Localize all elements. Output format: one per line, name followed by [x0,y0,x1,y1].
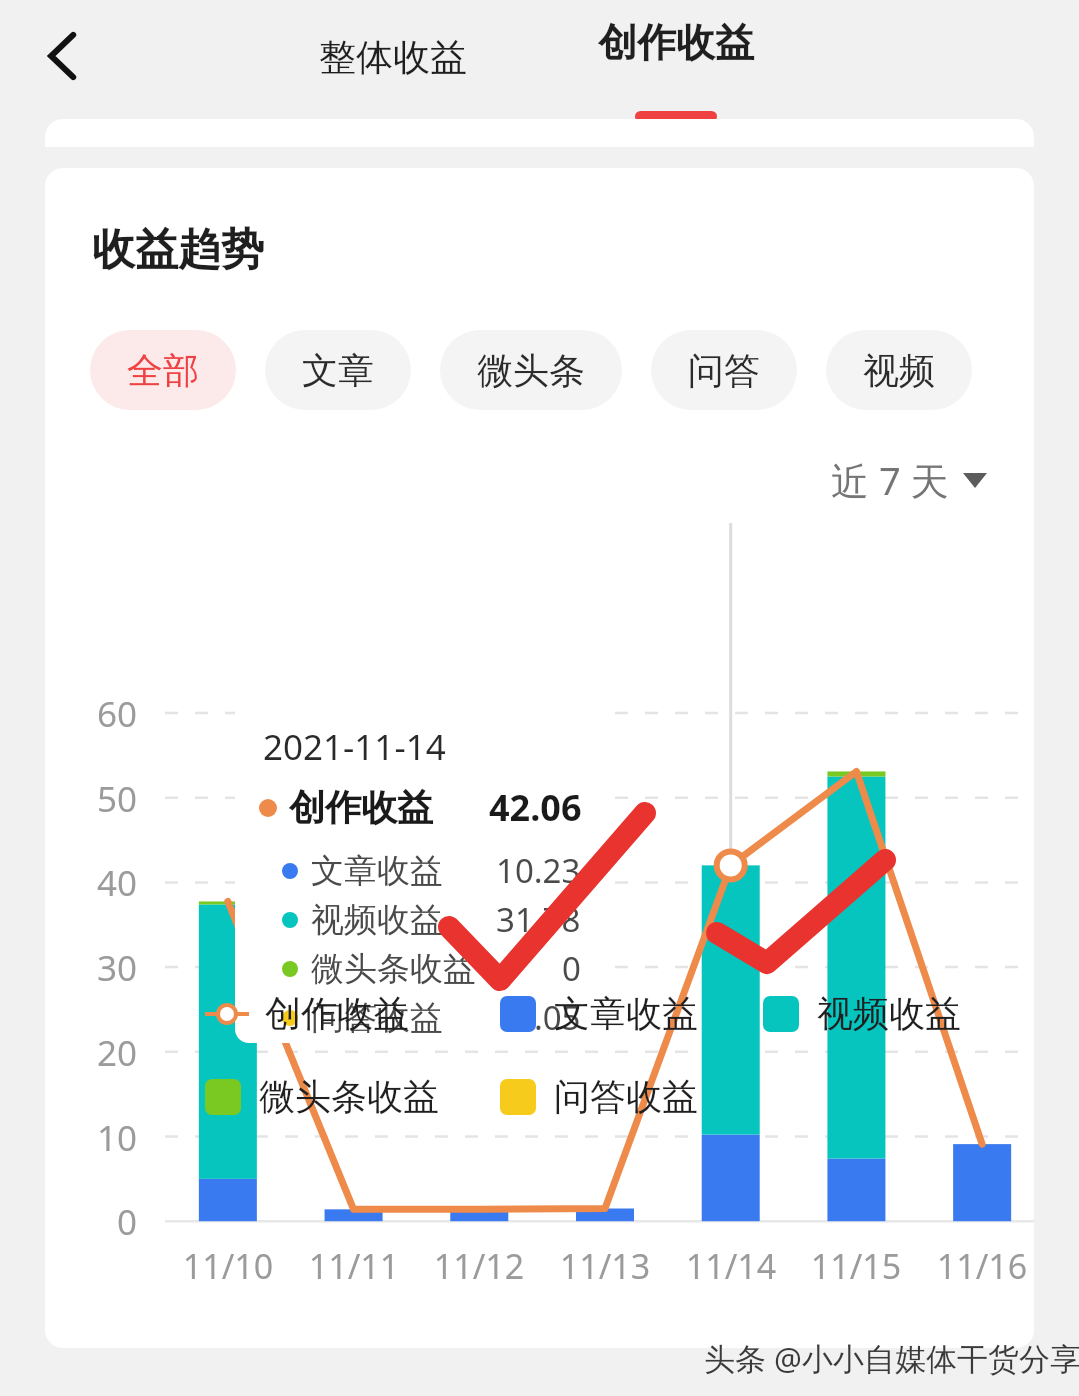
staticText: 视频 [863,348,935,393]
button[interactable]: 微头条收益 [205,1074,439,1119]
staticText: 2021-11-14 [263,723,446,771]
staticText: 11/12 [415,1243,543,1289]
staticText: 11/15 [792,1243,920,1289]
button[interactable]: 文章 [265,330,411,410]
button[interactable]: 创作收益 [565,18,787,126]
staticText: 11/11 [290,1243,418,1289]
staticText: 50 [45,775,137,823]
staticText: 创作收益 [265,991,409,1036]
staticText: 全部 [127,348,199,393]
staticText: 11/13 [541,1243,669,1289]
button[interactable]: 文章收益 [500,991,698,1036]
staticText: 11/10 [164,1243,292,1289]
staticText: 收益趋势 [92,223,264,277]
button[interactable]: 全部 [90,330,236,410]
staticText: 近 7 天 [831,454,949,506]
staticText: 0 [562,946,581,991]
staticText: 42.06 [489,783,582,832]
staticText: 创作收益 [289,785,433,830]
button[interactable]: 整体收益 [288,20,498,94]
staticText: 40 [45,859,137,907]
staticText: 头条 @小小自媒体干货分享 [704,1337,1079,1379]
staticText: 文章 [302,348,374,393]
staticText: 创作收益 [598,18,754,67]
staticText: 文章收益 [554,991,698,1036]
staticText: 31.78 [496,897,581,942]
button[interactable]: 视频收益 [763,991,961,1036]
staticText: 问答收益 [554,1074,698,1119]
staticText: 11/16 [918,1243,1034,1289]
staticText: 视频收益 [817,991,961,1036]
staticText: 整体收益 [319,34,467,81]
staticText: 微头条 [477,348,585,393]
staticText: 0.05 [515,995,581,1040]
staticText: 10 [45,1114,137,1162]
button[interactable]: Back [20,12,108,100]
button[interactable]: 问答 [651,330,797,410]
staticText: 11/14 [667,1243,795,1289]
button[interactable]: 视频 [826,330,972,410]
staticText: 0 [45,1198,137,1246]
button[interactable]: 微头条 [440,330,622,410]
button[interactable]: 近 7 天 [831,454,987,506]
staticText: 10.23 [496,848,581,893]
staticText: 微头条收益 [311,948,476,990]
staticText: 问答 [688,348,760,393]
staticText: 60 [45,690,137,738]
staticText: 30 [45,944,137,992]
staticText: 文章收益 [311,850,443,892]
staticText: 微头条收益 [259,1074,439,1119]
staticText: 20 [45,1029,137,1077]
staticText: 视频收益 [311,899,443,941]
button[interactable]: 创作收益 [205,991,409,1036]
button[interactable]: 问答收益 [500,1074,698,1119]
staticText: 问答收益 [311,997,443,1039]
